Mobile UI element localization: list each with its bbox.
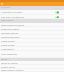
staticText: DOWNLOADS [1,19,14,22]
button[interactable]: Open Source Licenses [0,69,64,72]
staticText: Storage Location [1,32,19,35]
button[interactable]: Delete Downloads [0,35,64,39]
staticText: Continuous Playback [1,11,23,14]
staticText: Open Source Licenses [1,69,24,72]
button[interactable]: Auto Download [0,51,64,58]
staticText: Video Quality [1,44,15,47]
button[interactable]: Continuous Playback [0,10,64,15]
button[interactable]: Audio Quality [0,39,64,43]
staticText: Notifications [1,48,15,51]
staticText: Terms of Service [1,62,18,65]
staticText: ABOUT [1,58,8,60]
button[interactable]: Privacy Policy [0,65,64,69]
button[interactable]: Toggle setting [55,16,59,19]
button[interactable]: Play Over Notifications [0,15,64,19]
staticText: Play Over Notifications [1,16,25,19]
staticText: Audio Quality [1,40,15,43]
staticText: Privacy Policy [1,66,15,69]
staticText: PLAYBACK [1,6,11,9]
staticText: Download Quality [1,28,20,31]
button[interactable]: Video Quality [0,43,64,47]
button[interactable]: Toggle setting [55,11,59,14]
staticText: Make Preferred Device [1,24,25,27]
button[interactable]: Storage Location [0,31,64,35]
button[interactable]: Make Preferred Device [0,23,64,27]
staticText: Auto Download [1,53,17,56]
staticText: Delete Downloads [1,36,20,39]
button[interactable]: Navigate up [0,2,4,6]
button[interactable]: Notifications [0,47,64,51]
button[interactable]: Terms of Service [0,61,64,65]
button[interactable]: Download Quality [0,27,64,31]
